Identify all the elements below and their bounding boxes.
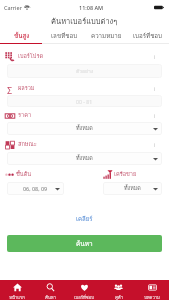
- button[interactable]: Articles: [135, 280, 169, 300]
- staticText: ทั้งหมด: [124, 184, 141, 193]
- button[interactable]: ความหมาย: [85, 29, 127, 43]
- button[interactable]: Partners: [101, 280, 135, 300]
- staticText: เครือข่าย: [114, 170, 137, 179]
- staticText: i: [154, 85, 156, 92]
- button[interactable]: Information: [150, 84, 159, 93]
- button[interactable]: Search: [33, 280, 67, 300]
- button[interactable]: ตัวอย่าง: [7, 64, 162, 78]
- staticText: ราคา: [18, 111, 32, 120]
- button[interactable]: Favourites: [67, 280, 101, 300]
- button[interactable]: Home: [0, 280, 33, 300]
- staticText: 06, 08, 09: [23, 185, 48, 192]
- staticText: ความหมาย: [91, 31, 122, 41]
- staticText: i: [154, 141, 156, 148]
- staticText: เบอร์โปรด: [18, 52, 44, 61]
- staticText: ตัวอย่าง: [76, 67, 94, 75]
- staticText: ขึ้นต้น: [16, 170, 32, 179]
- staticText: ขั้นสูง: [14, 31, 30, 41]
- button[interactable]: ขั้นสูง: [0, 29, 43, 43]
- button[interactable]: เบอร์ที่ชอบ: [127, 29, 169, 43]
- staticText: Σ: [7, 84, 13, 94]
- button[interactable]: เลขที่ชอบ: [43, 29, 85, 43]
- staticText: คู่ค้า: [115, 294, 123, 300]
- staticText: เลขที่ชอบ: [51, 31, 78, 41]
- button[interactable]: Information: [150, 111, 159, 120]
- staticText: i: [154, 53, 156, 60]
- staticText: ค้นหา: [45, 294, 56, 300]
- button[interactable]: ทั้งหมด: [7, 122, 162, 135]
- staticText: ผลรวม: [18, 84, 35, 93]
- button[interactable]: ทั้งหมด: [7, 152, 162, 165]
- button[interactable]: Information: [150, 52, 159, 61]
- staticText: ลักษณะ: [18, 140, 37, 149]
- button[interactable]: Information: [150, 140, 159, 149]
- staticText: ทั้งหมด: [76, 154, 93, 163]
- staticText: ค้นหาเบอร์แบบต่างๆ: [51, 15, 118, 27]
- staticText: 00 - 81: [76, 98, 93, 105]
- staticText: บทความ: [144, 294, 160, 300]
- staticText: เคลียร์: [76, 214, 93, 222]
- staticText: 11:08 AM: [79, 4, 104, 11]
- staticText: i: [154, 112, 156, 119]
- button[interactable]: 06, 08, 09: [7, 182, 64, 195]
- staticText: เบอร์ที่ชอบ: [74, 294, 94, 300]
- staticText: หน้าแรก: [9, 294, 25, 300]
- staticText: Carrier: [4, 4, 22, 11]
- button[interactable]: ค้นหา: [7, 235, 162, 252]
- button[interactable]: 00 - 81: [7, 95, 162, 107]
- staticText: ค้นหา: [76, 239, 93, 249]
- button[interactable]: ทั้งหมด: [103, 182, 162, 195]
- staticText: เบอร์ที่ชอบ: [133, 31, 163, 41]
- staticText: ทั้งหมด: [76, 124, 93, 133]
- button[interactable]: เคลียร์: [72, 212, 97, 224]
